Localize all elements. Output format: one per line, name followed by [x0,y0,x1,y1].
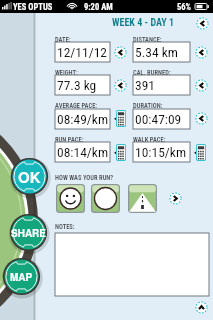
button[interactable]: WEEK 4 - DAY 1 [112,17,174,29]
button[interactable]: 77.3 kg [55,75,110,95]
button[interactable]: 08:49/km [55,109,110,129]
button[interactable]: More photos [169,192,182,205]
button[interactable]: SHARE [6,210,51,255]
button[interactable]: 5.34 km [133,42,190,62]
staticText: RUN PACE: [55,136,84,144]
staticText: 77.3 kg [57,77,97,93]
button[interactable]: OK [7,154,52,199]
staticText: 08:14/km [57,144,109,160]
staticText: 56% [177,2,192,12]
button[interactable]: 08:14/km [55,142,110,162]
button[interactable]: Run photo [91,184,120,213]
button[interactable]: Back [196,17,209,30]
button[interactable]: 10:15/km [133,142,190,162]
staticText: AVERAGE PACE: [55,102,98,110]
button[interactable]: WEIGHT: [114,79,127,92]
staticText: SHARE [11,226,46,240]
button[interactable]: Calculator [196,144,206,161]
staticText: WEEK 4 - DAY 1 [112,17,174,29]
staticText: DISTANCE: [133,36,162,44]
button[interactable]: DATE: [114,46,127,59]
staticText: NOTES: [55,223,75,231]
button[interactable]: Run photo [128,184,157,213]
staticText: 08:49/km [57,111,109,127]
staticText: YES OPTUS [13,2,53,12]
button[interactable]: MAP [0,254,44,299]
staticText: WALK PACE: [133,136,166,144]
button[interactable]: Calculator [116,144,126,161]
staticText: DATE: [55,36,71,44]
button[interactable]: DURATION: [195,112,208,125]
staticText: CAL. BURNED: [133,69,171,77]
button[interactable]: CAL. BURNED: [195,79,208,92]
button[interactable]: 391 [133,75,190,95]
staticText: 10:15/km [135,144,187,160]
staticText: 5.34 km [135,44,178,60]
staticText: 9:20 AM [84,2,113,12]
button[interactable]: Run photo [56,184,85,213]
staticText: 00:47:09 [135,111,182,127]
staticText: 12/11/12 [57,44,108,60]
button[interactable] [55,233,209,296]
staticText: DURATION: [133,102,163,110]
staticText: HOW WAS YOUR RUN? [55,174,114,182]
button[interactable]: Scroll up [195,301,208,314]
staticText: MAP [10,270,33,284]
button[interactable]: Calculator [116,110,126,127]
button[interactable]: 00:47:09 [133,109,190,129]
staticText: OK [18,166,41,187]
button[interactable]: 12/11/12 [55,42,110,62]
button[interactable]: DISTANCE: [195,46,208,59]
staticText: WEIGHT: [55,69,78,77]
staticText: 391 [135,77,155,93]
